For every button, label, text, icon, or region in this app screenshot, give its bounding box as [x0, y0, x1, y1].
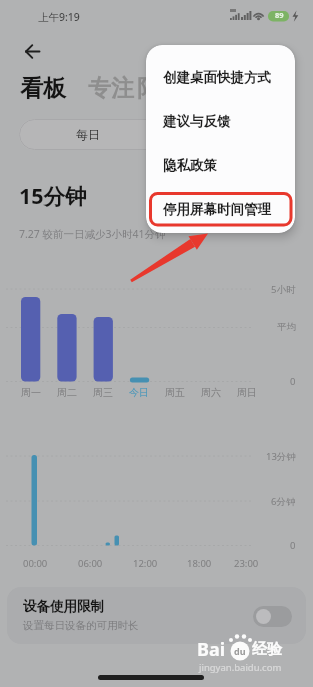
button[interactable]: 停用屏幕时间管理 — [146, 187, 295, 231]
staticText: 专注 — [88, 74, 134, 103]
staticText: 每日 — [76, 127, 100, 142]
staticText: Bai — [197, 637, 226, 662]
staticText: 经验 — [252, 640, 282, 659]
button[interactable] — [18, 40, 46, 64]
button[interactable]: 创建桌面快捷方式 — [146, 55, 295, 99]
staticText: 设置每日设备的可用时长 — [23, 619, 139, 632]
staticText: 7.27 较前一日减少3小时41分钟 — [19, 227, 166, 241]
staticText: 周六 — [201, 386, 221, 399]
staticText: 周一 — [21, 386, 41, 399]
staticText: du — [234, 645, 246, 657]
staticText: 周二 — [57, 386, 77, 399]
staticText: 限额 — [137, 74, 183, 103]
staticText: 18:00 — [187, 557, 212, 570]
staticText: 周三 — [93, 386, 113, 399]
staticText: jingyan.baidu.com — [199, 661, 282, 674]
button[interactable]: 隐私政策 — [146, 143, 295, 187]
staticText: 今日 — [129, 386, 149, 399]
staticText: 周五 — [165, 386, 185, 399]
staticText: 6分钟 — [271, 495, 296, 508]
staticText: 平均 — [277, 321, 296, 333]
staticText: 06:00 — [78, 557, 103, 570]
staticText: 0 — [290, 375, 296, 388]
staticText: 创建桌面快捷方式 — [163, 69, 271, 86]
staticText: 89 — [275, 10, 284, 20]
staticText: 0 — [290, 539, 296, 552]
staticText: 周日 — [237, 386, 257, 399]
staticText: 每周 — [213, 127, 237, 142]
staticText: 上午9:19 — [38, 10, 80, 24]
staticText: 5小时 — [271, 283, 296, 296]
button[interactable]: 设备使用限制 — [7, 587, 306, 644]
staticText: 15分钟 — [19, 181, 87, 210]
button[interactable] — [253, 606, 292, 627]
button[interactable]: 每周 — [156, 119, 294, 150]
button[interactable]: 建议与反馈 — [146, 99, 295, 143]
staticText: 隐私政策 — [163, 157, 217, 174]
button[interactable]: 每日 — [19, 119, 156, 150]
staticText: 23:00 — [234, 557, 259, 570]
staticText: 看板 — [20, 74, 66, 103]
staticText: 00:00 — [23, 557, 48, 570]
staticText: 12:00 — [133, 557, 158, 570]
staticText: 设备使用限制 — [23, 598, 104, 615]
staticText: 建议与反馈 — [163, 113, 231, 130]
staticText: 停用屏幕时间管理 — [163, 201, 271, 218]
staticText: 13分钟 — [266, 450, 296, 463]
